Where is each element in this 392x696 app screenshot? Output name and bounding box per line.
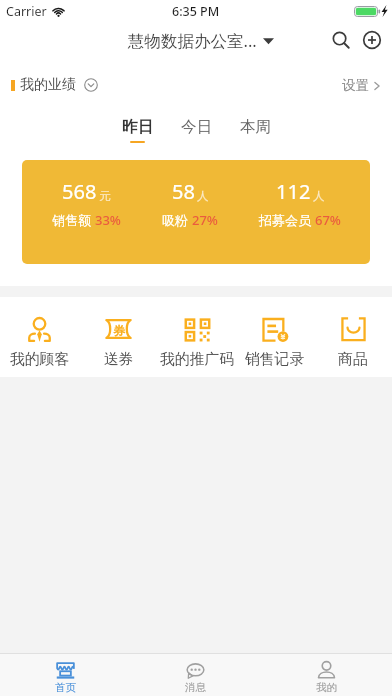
staticText: Carrier <box>6 3 47 20</box>
button[interactable]: 本周 <box>237 105 274 143</box>
staticText: 首页 <box>55 681 76 694</box>
button[interactable]: Add <box>358 23 386 57</box>
staticText: 元 <box>99 189 111 203</box>
staticText: 我的业绩 <box>20 76 76 94</box>
button[interactable]: 我的 <box>261 656 392 694</box>
staticText: 吸粉 <box>162 212 188 228</box>
staticText: 消息 <box>185 681 206 694</box>
staticText: 昨日 <box>122 117 153 137</box>
staticText: 我的推广码 <box>160 350 234 369</box>
staticText: 33% <box>95 211 121 229</box>
staticText: 销售额 <box>52 212 91 228</box>
staticText: 销售记录 <box>245 350 305 369</box>
staticText: 本周 <box>240 117 271 137</box>
button[interactable]: 我的推广码 <box>158 297 236 369</box>
button[interactable]: 券 <box>79 297 158 369</box>
staticText: 67% <box>315 211 341 229</box>
button[interactable]: 设置 <box>330 71 392 100</box>
staticText: 招募会员 <box>259 212 311 228</box>
staticText: 商品 <box>338 350 368 369</box>
staticText: 设置 <box>342 77 369 94</box>
staticText: 58 <box>172 178 195 205</box>
button[interactable]: 首页 <box>0 656 130 694</box>
staticText: 我的顾客 <box>10 350 70 369</box>
button[interactable]: 568 <box>22 160 370 264</box>
staticText: 人 <box>197 189 209 203</box>
button[interactable]: Expand <box>81 75 101 95</box>
button[interactable]: 昨日 <box>119 105 156 143</box>
staticText: 112 <box>276 178 311 205</box>
staticText: 6:35 PM <box>172 3 220 20</box>
button[interactable]: 消息 <box>130 656 261 694</box>
staticText: 568 <box>62 178 97 205</box>
button[interactable]: 我的顾客 <box>0 297 79 369</box>
button[interactable]: 销售记录 <box>236 297 314 369</box>
staticText: 送券 <box>104 350 134 369</box>
staticText: 今日 <box>181 117 212 137</box>
button[interactable]: 慧物数据办公室... <box>128 29 274 52</box>
button[interactable]: 今日 <box>178 105 215 143</box>
staticText: 券 <box>113 323 125 338</box>
staticText: 我的 <box>316 681 337 694</box>
staticText: 慧物数据办公室... <box>128 29 257 52</box>
button[interactable]: Search <box>324 23 358 57</box>
button[interactable]: 商品 <box>314 297 392 369</box>
staticText: 人 <box>313 189 325 203</box>
staticText: 27% <box>192 211 218 229</box>
